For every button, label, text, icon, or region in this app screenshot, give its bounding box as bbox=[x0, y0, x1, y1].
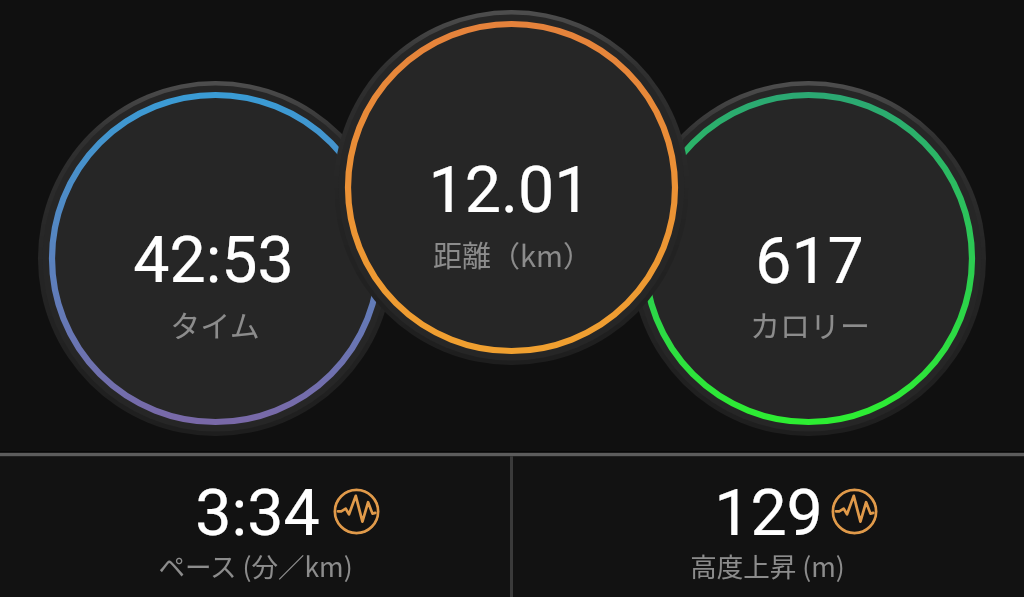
staticText: 3:34 bbox=[195, 475, 320, 551]
button[interactable]: Heart rate detail bbox=[333, 488, 380, 535]
button[interactable]: タイム 42:53 bbox=[38, 81, 393, 436]
button[interactable]: カロリー 617 bbox=[631, 81, 986, 436]
staticText: カロリー bbox=[750, 302, 870, 345]
button[interactable]: ペース (分／km) 3:34 bbox=[0, 456, 510, 597]
staticText: ペース (分／km) bbox=[158, 546, 353, 584]
staticText: 617 bbox=[755, 223, 864, 299]
staticText: 12.01 bbox=[428, 152, 591, 228]
staticText: 高度上昇 (m) bbox=[690, 546, 845, 584]
staticText: 42:53 bbox=[133, 222, 294, 298]
button[interactable]: 距離（km） 12.01 bbox=[334, 10, 689, 365]
staticText: 距離（km） bbox=[433, 233, 592, 275]
button[interactable]: 高度上昇 (m) 129 bbox=[513, 456, 1024, 597]
staticText: 129 bbox=[714, 475, 823, 551]
button[interactable]: Heart rate detail bbox=[831, 488, 878, 535]
staticText: タイム bbox=[170, 302, 260, 345]
